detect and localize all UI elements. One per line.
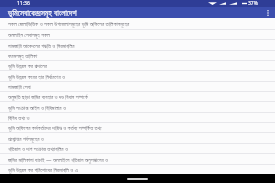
button[interactable]: খতিয়ান ও দাগ সংক্রান্ত তথ্যাবলির ও (0, 144, 275, 153)
staticText: অনুমতি ছাড়া জমির ব্যবহার ও দণ্ড বিধান স… (8, 93, 88, 100)
button[interactable]: ভূমি উন্নয়ন কর পরিশোধের নিয়মাবলি ও এ (0, 165, 275, 174)
button[interactable]: নামজারি সেবা (0, 82, 275, 91)
staticText: প্রশ্নোত্তর পর্বসমূহের ও (8, 135, 44, 142)
staticText: 11:36 (17, 0, 30, 7)
staticText: ভূমি উন্নয়ন করের হার নির্ধারণের ও (8, 73, 66, 80)
staticText: 37% (248, 0, 258, 7)
staticText: ভূমি উন্নয়ন কর পরিশোধের নিয়মাবলি ও এ (8, 166, 78, 173)
staticText: বিবিধ তথ্য ও (8, 114, 30, 121)
button[interactable]: ফরমসমূহ তালিকা (0, 51, 275, 60)
staticText: জমির মালিকানা যাচাই — অনলাইনে খতিয়ান অন… (8, 156, 108, 163)
button[interactable]: অনলাইন সেবাসমূহ সকল (0, 30, 275, 39)
button[interactable]: ভূমি অফিসের কর্মকর্তাদের দায়িত্ব ও কর্ত… (0, 123, 275, 132)
staticText: ভূমি অফিসের কর্মকর্তাদের দায়িত্ব ও কর্ত… (8, 124, 102, 131)
button[interactable]: ভূমি সংক্রান্ত আইন ও বিধিমালার ও (0, 102, 275, 112)
staticText: অনলাইন সেবাসমূহ সকল (8, 31, 50, 38)
button[interactable]: More options (262, 7, 273, 18)
button[interactable]: বিবিধ তথ্য ও (0, 113, 275, 122)
button[interactable]: প্রশ্নোত্তর পর্বসমূহের ও (0, 133, 275, 143)
staticText: ভূমি উন্নয়ন কর প্রদানের (8, 62, 47, 69)
staticText: ভূমিসেবাকেন্দ্রসমূহ বাংলাদেশ (8, 7, 77, 18)
button[interactable]: ভূমি উন্নয়ন কর প্রদানের (0, 61, 275, 70)
staticText: খতিয়ান ও দাগ সংক্রান্ত তথ্যাবলির ও (8, 145, 68, 152)
staticText: ফরমসমূহ তালিকা (8, 52, 38, 59)
staticText: সকল জেলাভিত্তিক ও সকল উপজেলাসমূহের ভূমি … (8, 20, 130, 27)
button[interactable]: নামজারি আবেদনের পদ্ধতি ও নিয়মাবলির (0, 40, 275, 50)
staticText: নামজারি সেবা (8, 83, 31, 90)
button[interactable]: অনুমতি ছাড়া জমির ব্যবহার ও দণ্ড বিধান স… (0, 92, 275, 101)
staticText: নামজারি আবেদনের পদ্ধতি ও নিয়মাবলির (8, 42, 75, 49)
button[interactable]: সকল জেলাভিত্তিক ও সকল উপজেলাসমূহের ভূমি … (0, 18, 275, 29)
button[interactable]: জমির মালিকানা যাচাই — অনলাইনে খতিয়ান অন… (0, 154, 275, 164)
button[interactable]: ভূমি উন্নয়ন করের হার নির্ধারণের ও (0, 71, 275, 81)
staticText: ভূমি সংক্রান্ত আইন ও বিধিমালার ও (8, 104, 66, 111)
